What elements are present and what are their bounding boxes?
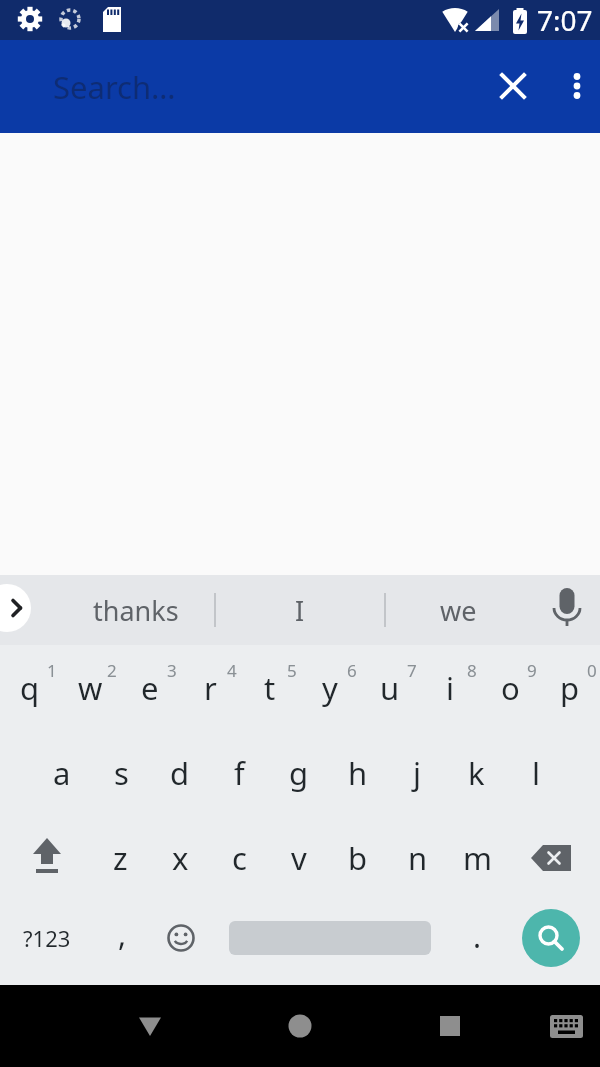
- button[interactable]: h: [328, 731, 388, 815]
- staticText: h: [348, 752, 368, 794]
- staticText: 5: [287, 659, 297, 682]
- staticText: 6: [347, 659, 357, 682]
- button[interactable]: [489, 62, 537, 110]
- button[interactable]: [420, 996, 480, 1056]
- staticText: q: [20, 667, 40, 709]
- staticText: v: [291, 837, 307, 879]
- staticText: I: [295, 592, 305, 629]
- staticText: 7:07: [537, 1, 593, 39]
- staticText: ?123: [23, 923, 71, 953]
- button[interactable]: [516, 823, 586, 893]
- staticText: s: [114, 752, 129, 794]
- staticText: ,: [118, 914, 127, 955]
- staticText: y: [322, 667, 338, 709]
- staticText: o: [501, 667, 520, 709]
- button[interactable]: q: [0, 646, 60, 730]
- button[interactable]: w: [60, 646, 120, 730]
- staticText: f: [234, 752, 245, 794]
- staticText: c: [232, 837, 247, 879]
- button[interactable]: ?123: [12, 903, 82, 973]
- staticText: i: [446, 667, 454, 709]
- staticText: b: [348, 837, 368, 879]
- staticText: 9: [527, 659, 537, 682]
- button[interactable]: n: [388, 816, 448, 900]
- staticText: p: [560, 667, 580, 709]
- staticText: l: [532, 752, 540, 794]
- button[interactable]: s: [91, 731, 151, 815]
- button[interactable]: c: [209, 816, 269, 900]
- staticText: 1: [47, 659, 57, 682]
- staticText: 2: [107, 659, 117, 682]
- button[interactable]: p: [540, 646, 600, 730]
- staticText: thanks: [93, 592, 179, 629]
- button[interactable]: Search…: [53, 66, 176, 108]
- button[interactable]: d: [150, 731, 210, 815]
- button[interactable]: g: [269, 731, 329, 815]
- button[interactable]: l: [506, 731, 566, 815]
- staticText: .: [473, 916, 482, 957]
- staticText: 4: [227, 659, 237, 682]
- staticText: w: [78, 667, 103, 709]
- staticText: z: [113, 837, 128, 879]
- button[interactable]: [120, 996, 180, 1056]
- button[interactable]: v: [269, 816, 329, 900]
- staticText: j: [413, 752, 421, 794]
- button[interactable]: [537, 577, 597, 637]
- button[interactable]: o: [480, 646, 540, 730]
- button[interactable]: [270, 996, 330, 1056]
- button[interactable]: [151, 908, 211, 968]
- button[interactable]: [12, 823, 82, 893]
- staticText: 0: [587, 659, 597, 682]
- button[interactable]: y: [300, 646, 360, 730]
- staticText: x: [172, 837, 189, 879]
- staticText: t: [264, 667, 276, 709]
- staticText: m: [463, 837, 492, 879]
- button[interactable]: ,: [92, 900, 152, 984]
- staticText: 3: [167, 659, 177, 682]
- staticText: d: [170, 752, 190, 794]
- button[interactable]: b: [328, 816, 388, 900]
- staticText: Search…: [53, 66, 176, 108]
- button[interactable]: x: [150, 816, 210, 900]
- staticText: k: [468, 752, 485, 794]
- staticText: 7: [407, 659, 417, 682]
- button[interactable]: z: [90, 816, 150, 900]
- staticText: g: [289, 752, 309, 794]
- button[interactable]: [0, 584, 31, 632]
- staticText: e: [141, 667, 159, 709]
- button[interactable]: k: [446, 731, 506, 815]
- staticText: n: [408, 837, 428, 879]
- button[interactable]: .: [447, 900, 507, 984]
- button[interactable]: t: [240, 646, 300, 730]
- button[interactable]: r: [180, 646, 240, 730]
- button[interactable]: m: [447, 816, 507, 900]
- staticText: u: [380, 667, 400, 709]
- button[interactable]: thanks: [61, 575, 211, 645]
- button[interactable]: e: [120, 646, 180, 730]
- button[interactable]: j: [387, 731, 447, 815]
- staticText: a: [53, 752, 71, 794]
- button[interactable]: i: [420, 646, 480, 730]
- button[interactable]: [536, 996, 596, 1056]
- button[interactable]: u: [360, 646, 420, 730]
- button[interactable]: we: [383, 575, 533, 645]
- button[interactable]: [522, 909, 580, 967]
- button[interactable]: f: [209, 731, 269, 815]
- staticText: we: [440, 592, 477, 629]
- button[interactable]: [553, 62, 600, 109]
- button[interactable]: a: [32, 731, 92, 815]
- staticText: 8: [467, 659, 477, 682]
- button[interactable]: I: [225, 575, 375, 645]
- staticText: r: [204, 667, 217, 709]
